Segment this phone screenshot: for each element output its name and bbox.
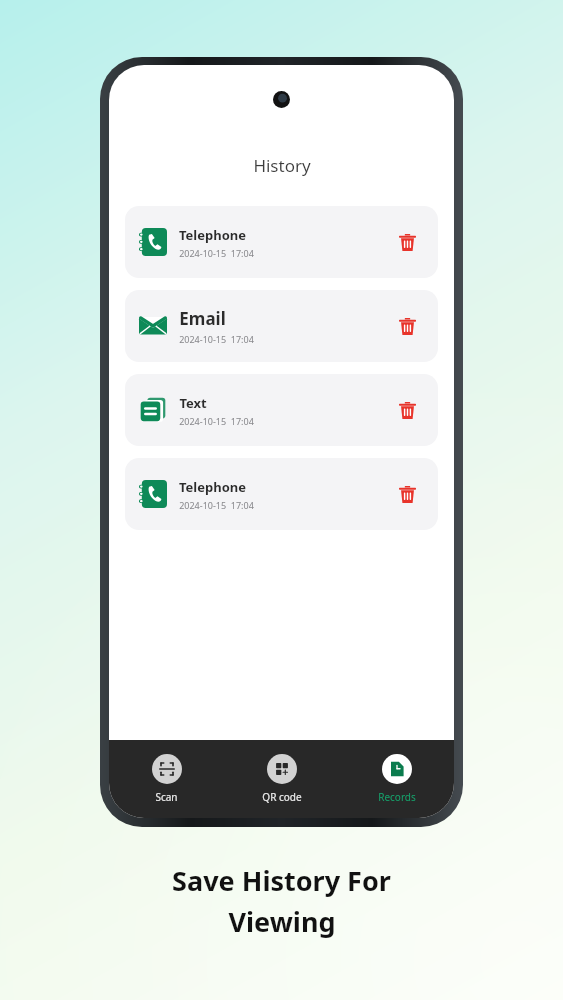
- staticText: QR code: [262, 790, 302, 804]
- staticText: Viewing: [228, 903, 336, 940]
- button[interactable]: Delete record: [390, 225, 424, 259]
- button[interactable]: Telephone: [125, 458, 438, 530]
- staticText: Telephone: [179, 226, 246, 244]
- button[interactable]: Email: [125, 290, 438, 362]
- staticText: Records: [378, 790, 416, 804]
- staticText: 2024-10-15 17:04: [179, 499, 254, 511]
- button[interactable]: Text: [125, 374, 438, 446]
- staticText: Save History For: [172, 862, 391, 899]
- staticText: Scan: [155, 790, 178, 804]
- staticText: 2024-10-15 17:04: [179, 333, 254, 345]
- staticText: Telephone: [179, 478, 246, 496]
- staticText: 2024-10-15 17:04: [179, 415, 254, 427]
- button[interactable]: Delete record: [390, 309, 424, 343]
- button[interactable]: Delete record: [390, 477, 424, 511]
- staticText: History: [253, 154, 311, 177]
- staticText: Text: [179, 394, 207, 412]
- button[interactable]: Telephone: [125, 206, 438, 278]
- staticText: Email: [179, 307, 226, 330]
- staticText: 2024-10-15 17:04: [179, 247, 254, 259]
- button[interactable]: QR code: [224, 746, 339, 812]
- button[interactable]: Records: [339, 746, 454, 812]
- button[interactable]: Delete record: [390, 393, 424, 427]
- button[interactable]: Scan: [109, 746, 224, 812]
